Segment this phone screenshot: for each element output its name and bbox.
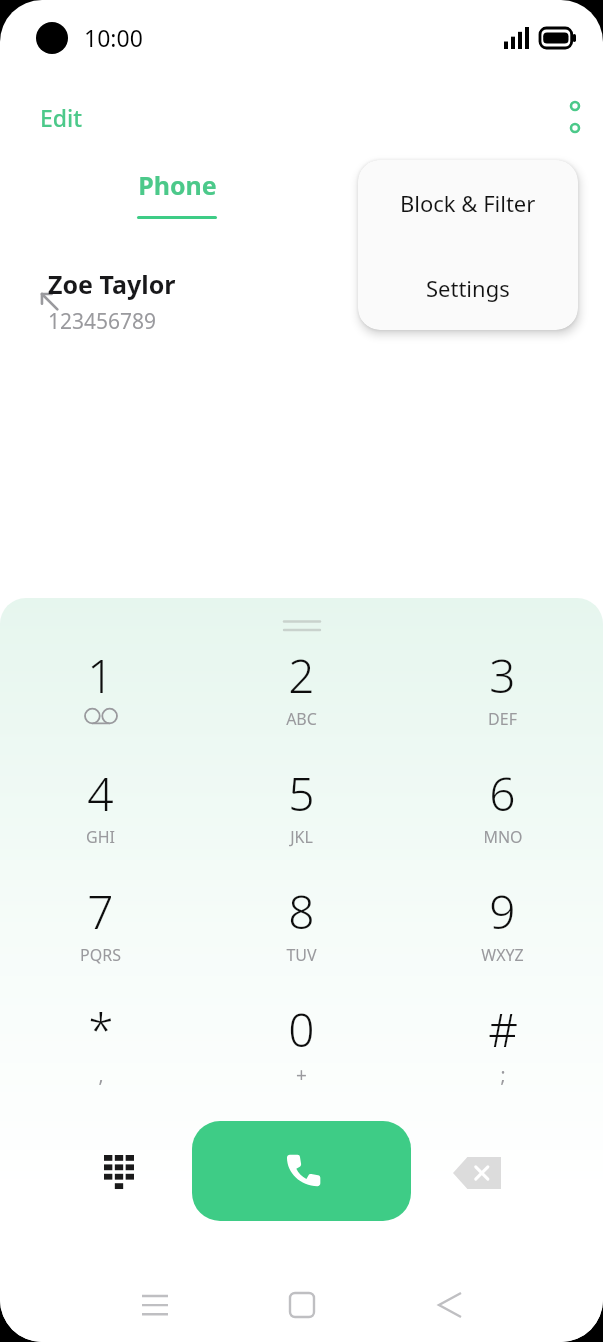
- button[interactable]: 7: [0, 878, 201, 988]
- staticText: +: [296, 1062, 307, 1088]
- button[interactable]: Keypad: [86, 1137, 152, 1209]
- button[interactable]: 1: [0, 642, 201, 752]
- button[interactable]: Back: [425, 1279, 475, 1331]
- button[interactable]: 0: [201, 996, 402, 1106]
- staticText: PQRS: [80, 944, 121, 966]
- staticText: Phone: [138, 168, 217, 202]
- button[interactable]: Call: [192, 1121, 411, 1221]
- button[interactable]: Backspace: [437, 1141, 517, 1205]
- staticText: 1: [87, 644, 114, 707]
- button[interactable]: Edit: [0, 90, 123, 145]
- staticText: ,: [98, 1062, 104, 1088]
- button[interactable]: 9: [402, 878, 603, 988]
- staticText: 123456789: [48, 307, 157, 336]
- staticText: 8: [288, 880, 315, 943]
- button[interactable]: Home: [276, 1279, 328, 1331]
- staticText: 7: [87, 880, 114, 943]
- staticText: GHI: [86, 826, 115, 848]
- button[interactable]: Settings: [358, 245, 578, 330]
- staticText: Block & Filter: [400, 188, 536, 218]
- staticText: 3: [489, 644, 516, 707]
- staticText: JKL: [290, 826, 313, 848]
- staticText: 9: [489, 880, 516, 943]
- button[interactable]: 2: [201, 642, 402, 752]
- button[interactable]: Recents: [128, 1281, 182, 1329]
- staticText: DEF: [488, 708, 517, 730]
- button[interactable]: Block & Filter: [358, 160, 578, 245]
- button[interactable]: 8: [201, 878, 402, 988]
- button[interactable]: Zoe Taylor: [0, 262, 603, 340]
- staticText: MNO: [483, 826, 523, 848]
- staticText: #: [488, 998, 518, 1061]
- staticText: ;: [500, 1062, 506, 1088]
- staticText: Settings: [426, 273, 510, 303]
- staticText: 10:00: [84, 22, 143, 53]
- staticText: 5: [288, 762, 315, 825]
- staticText: Edit: [40, 102, 83, 133]
- staticText: *: [88, 998, 114, 1061]
- button[interactable]: Phone: [122, 168, 232, 219]
- button[interactable]: 4: [0, 760, 201, 870]
- staticText: 6: [489, 762, 516, 825]
- staticText: 4: [87, 762, 114, 825]
- button[interactable]: More options: [547, 84, 603, 150]
- button[interactable]: *: [0, 996, 201, 1106]
- button[interactable]: #: [402, 996, 603, 1106]
- button[interactable]: 3: [402, 642, 603, 752]
- staticText: Zoe Taylor: [48, 267, 176, 301]
- staticText: WXYZ: [481, 944, 524, 966]
- staticText: 2: [288, 644, 315, 707]
- staticText: TUV: [286, 944, 317, 966]
- button[interactable]: 6: [402, 760, 603, 870]
- button[interactable]: 5: [201, 760, 402, 870]
- staticText: 0: [288, 998, 315, 1061]
- staticText: ABC: [286, 708, 317, 730]
